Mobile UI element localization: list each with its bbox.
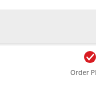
button[interactable]: Order placed — [68, 48, 96, 78]
button[interactable]: Order placed — [84, 51, 96, 63]
staticText: Order Pl — [70, 68, 96, 77]
